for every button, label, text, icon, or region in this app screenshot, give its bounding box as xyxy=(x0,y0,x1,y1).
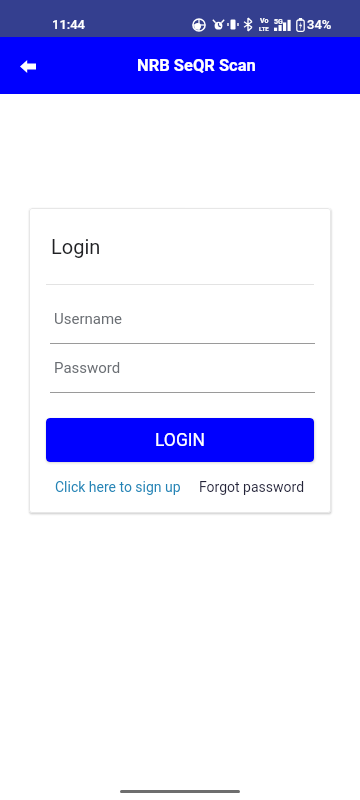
staticText: Click here to sign up xyxy=(55,479,181,495)
staticText: LTE xyxy=(259,25,269,32)
staticText: LOGIN xyxy=(155,430,206,451)
staticText: Forgot password xyxy=(199,479,305,495)
button[interactable]: Back xyxy=(8,46,48,86)
staticText: 34% xyxy=(307,17,332,32)
button[interactable]: Click here to sign up xyxy=(51,471,185,503)
button[interactable]: Forgot password xyxy=(195,471,309,503)
staticText: Username xyxy=(54,310,123,328)
staticText: Login xyxy=(51,235,101,258)
staticText: 11:44 xyxy=(52,17,86,32)
button[interactable]: Username xyxy=(50,309,315,344)
staticText: Password xyxy=(54,359,121,377)
staticText: NRB SeQR Scan xyxy=(137,56,256,75)
button[interactable]: Password xyxy=(50,358,315,393)
button[interactable]: LOGIN xyxy=(46,418,314,462)
staticText: 5G xyxy=(274,18,283,26)
staticText: Vo xyxy=(260,17,269,25)
